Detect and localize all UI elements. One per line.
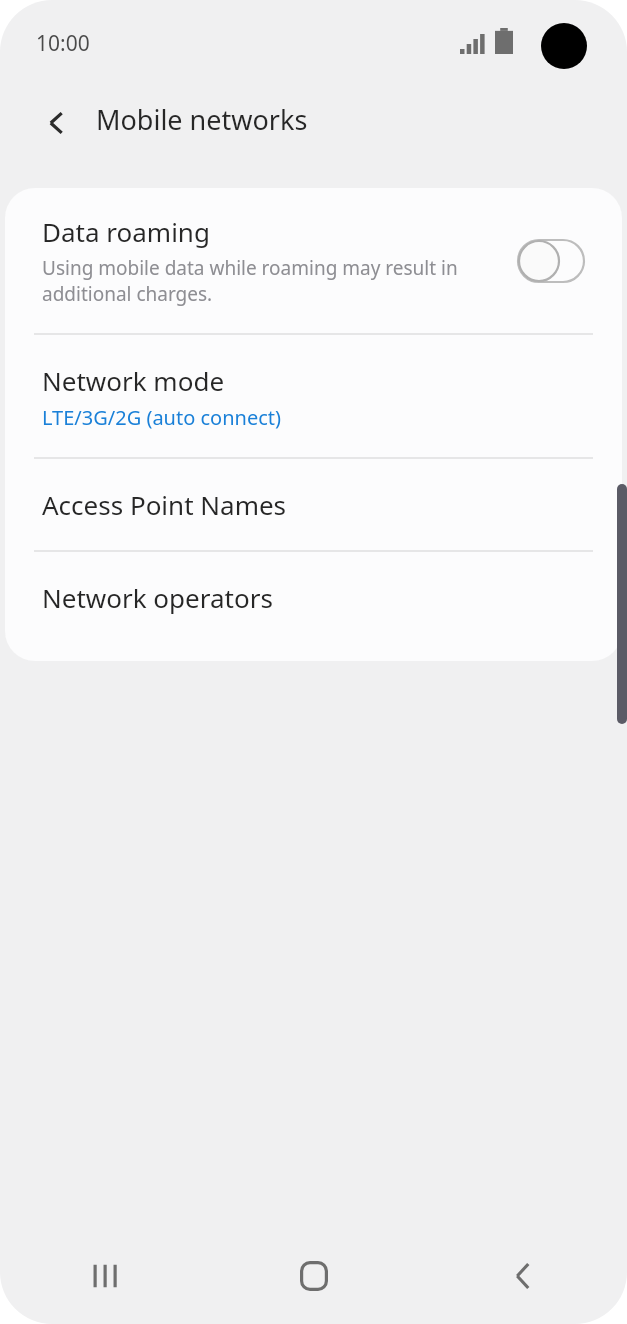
staticText: Using mobile data while roaming may resu… — [42, 255, 506, 307]
button[interactable]: Back — [418, 1228, 627, 1324]
button[interactable]: Data roaming toggle — [518, 240, 584, 282]
staticText: Network mode — [42, 363, 225, 398]
staticText: LTE/3G/2G (auto connect) — [42, 404, 282, 431]
button[interactable]: Recent apps — [0, 1228, 209, 1324]
staticText: 10:00 — [36, 29, 90, 58]
button[interactable]: Network mode — [5, 335, 622, 457]
staticText: Data roaming — [42, 214, 210, 249]
staticText: Network operators — [42, 580, 273, 615]
button[interactable]: Network operators — [5, 552, 622, 643]
button[interactable]: Home — [209, 1228, 418, 1324]
button[interactable]: Back — [26, 92, 88, 154]
staticText: Access Point Names — [42, 487, 287, 522]
button[interactable]: Data roaming — [5, 188, 622, 333]
button[interactable]: Access Point Names — [5, 459, 622, 550]
staticText: Mobile networks — [96, 101, 308, 138]
